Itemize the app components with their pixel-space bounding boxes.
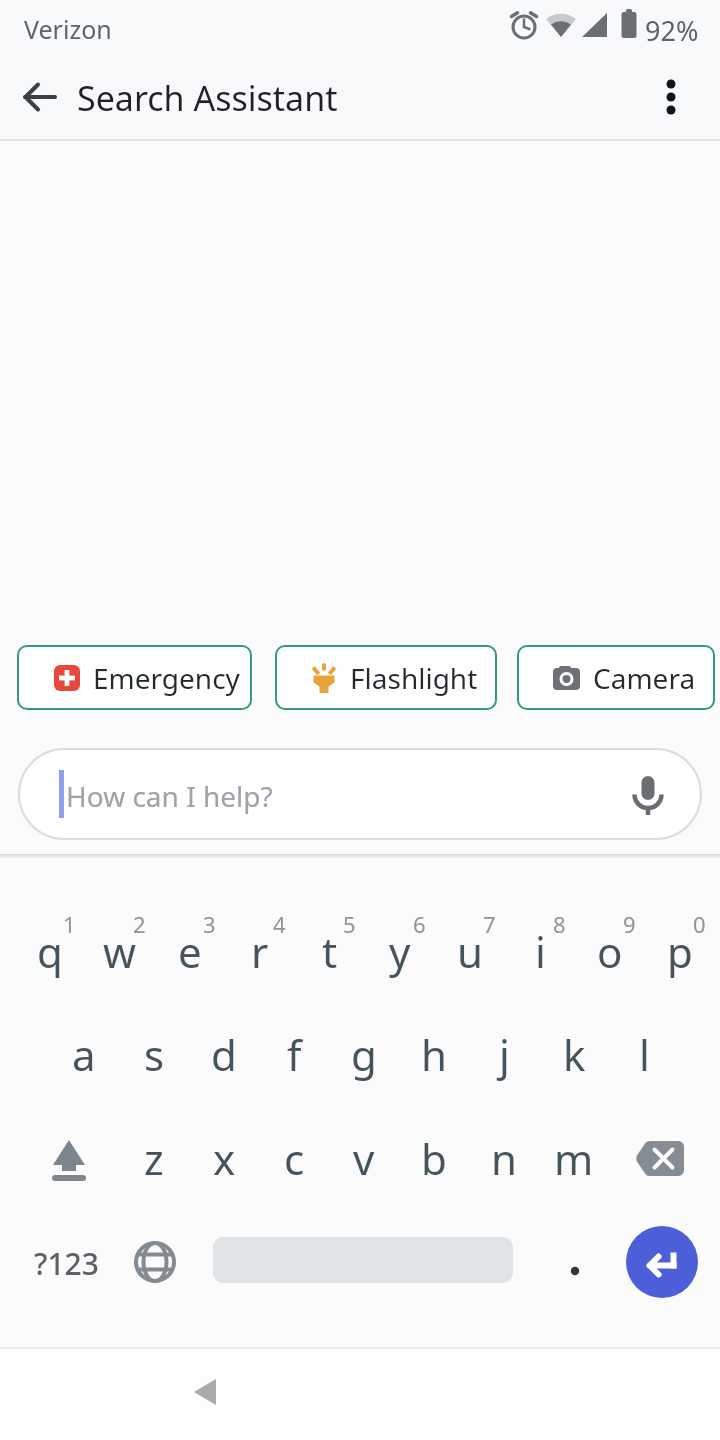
staticText: k [563, 1026, 586, 1083]
staticText: t [322, 923, 338, 980]
staticText: j [499, 1026, 510, 1083]
button[interactable]: z [119, 1106, 189, 1210]
button[interactable]: s [119, 1002, 189, 1106]
staticText: d [211, 1026, 237, 1083]
staticText: Flashlight [350, 659, 478, 697]
button[interactable] [643, 69, 699, 125]
button[interactable]: o [575, 899, 645, 1003]
button[interactable]: v [329, 1106, 399, 1210]
staticText: 5 [343, 909, 356, 939]
button[interactable] [618, 772, 678, 820]
button[interactable]: j [469, 1002, 539, 1106]
staticText: Emergency [93, 659, 240, 697]
staticText: w [103, 923, 137, 980]
staticText: Search Assistant [77, 75, 338, 121]
button[interactable]: y [365, 899, 435, 1003]
staticText: y [389, 923, 411, 980]
button[interactable]: How can I help? [18, 748, 702, 840]
staticText: c [284, 1130, 305, 1187]
button[interactable]: g [329, 1002, 399, 1106]
staticText: f [287, 1026, 302, 1083]
button[interactable]: l [609, 1002, 679, 1106]
button[interactable]: c [259, 1106, 329, 1210]
button[interactable]: Camera [517, 645, 715, 710]
button[interactable]: k [539, 1002, 609, 1106]
button[interactable]: d [189, 1002, 259, 1106]
staticText: q [37, 923, 63, 980]
staticText: ?123 [34, 1243, 99, 1284]
staticText: 1 [63, 909, 76, 939]
staticText: 6 [413, 909, 426, 939]
button[interactable]: t [295, 899, 365, 1003]
button[interactable]: w [85, 899, 155, 1003]
button[interactable]: r [225, 899, 295, 1003]
button[interactable]: e [155, 899, 225, 1003]
button[interactable]: Flashlight [275, 645, 497, 710]
staticText: 92% [645, 12, 699, 49]
staticText: 3 [203, 909, 216, 939]
staticText: u [457, 923, 483, 980]
staticText: l [639, 1026, 650, 1083]
staticText: z [144, 1130, 164, 1187]
button[interactable]: x [189, 1106, 259, 1210]
staticText: o [597, 923, 623, 980]
staticText: 4 [273, 909, 286, 939]
button[interactable] [12, 69, 68, 125]
staticText: 7 [483, 909, 496, 939]
staticText: r [251, 923, 269, 980]
staticText: n [491, 1130, 517, 1187]
staticText: i [535, 923, 546, 980]
button[interactable]: q [15, 899, 85, 1003]
staticText: e [178, 923, 202, 980]
staticText: How can I help? [66, 777, 273, 815]
staticText: b [421, 1130, 447, 1187]
button[interactable]: a [49, 1002, 119, 1106]
staticText: 9 [623, 909, 636, 939]
button[interactable] [120, 1227, 190, 1297]
button[interactable]: Emergency [17, 645, 252, 710]
staticText: Verizon [24, 12, 112, 46]
button[interactable]: u [435, 899, 505, 1003]
staticText: Camera [593, 659, 696, 697]
staticText: 0 [693, 909, 706, 939]
staticText: m [554, 1130, 594, 1187]
button[interactable]: ?123 [6, 1223, 126, 1303]
staticText: g [351, 1026, 377, 1083]
button[interactable]: h [399, 1002, 469, 1106]
button[interactable]: n [469, 1106, 539, 1210]
button[interactable]: m [539, 1106, 609, 1210]
staticText: 2 [133, 909, 146, 939]
button[interactable]: p [645, 899, 715, 1003]
button[interactable]: i [505, 899, 575, 1003]
button[interactable] [175, 1362, 235, 1422]
button[interactable] [34, 1125, 104, 1195]
staticText: h [421, 1026, 447, 1083]
staticText: p [667, 923, 693, 980]
button[interactable]: b [399, 1106, 469, 1210]
staticText: v [353, 1130, 375, 1187]
button[interactable] [626, 1226, 698, 1298]
staticText: x [213, 1130, 236, 1187]
staticText: 8 [553, 909, 566, 939]
button[interactable] [625, 1123, 695, 1193]
staticText: s [144, 1026, 165, 1083]
button[interactable] [545, 1227, 605, 1297]
staticText: a [72, 1026, 96, 1083]
button[interactable]: f [259, 1002, 329, 1106]
